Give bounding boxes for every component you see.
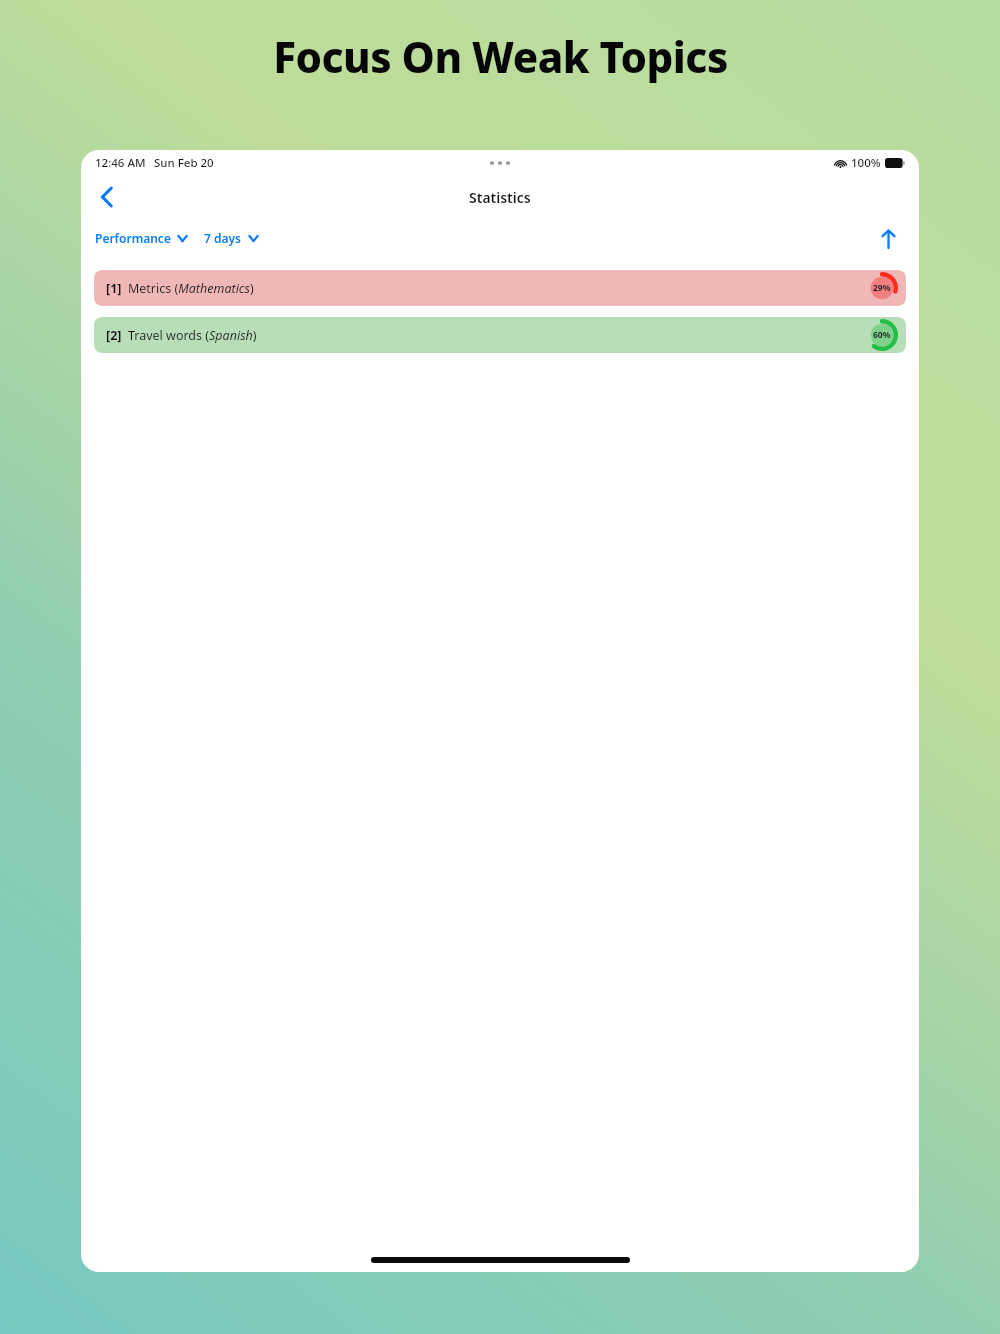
staticText: Statistics xyxy=(469,188,531,207)
staticText: 60% xyxy=(873,329,891,341)
staticText: [2] Travel words (Spanish) xyxy=(106,327,257,344)
button[interactable]: Back xyxy=(87,177,127,217)
staticText: [1] Metrics (Mathematics) xyxy=(106,280,254,297)
staticText: Focus On Weak Topics xyxy=(273,28,728,85)
button[interactable]: 7 days xyxy=(204,228,259,248)
staticText: Sun Feb 20 xyxy=(154,155,214,171)
button[interactable]: Performance xyxy=(95,228,188,248)
staticText: 7 days xyxy=(204,230,242,246)
button[interactable]: [1] Metrics (Mathematics) xyxy=(94,270,906,306)
staticText: 100% xyxy=(851,155,881,171)
staticText: 29% xyxy=(873,282,891,294)
staticText: Performance xyxy=(95,230,171,246)
staticText: 12:46 AM xyxy=(95,155,146,171)
button[interactable]: [2] Travel words (Spanish) xyxy=(94,317,906,353)
button[interactable]: Sort ascending xyxy=(871,221,905,255)
